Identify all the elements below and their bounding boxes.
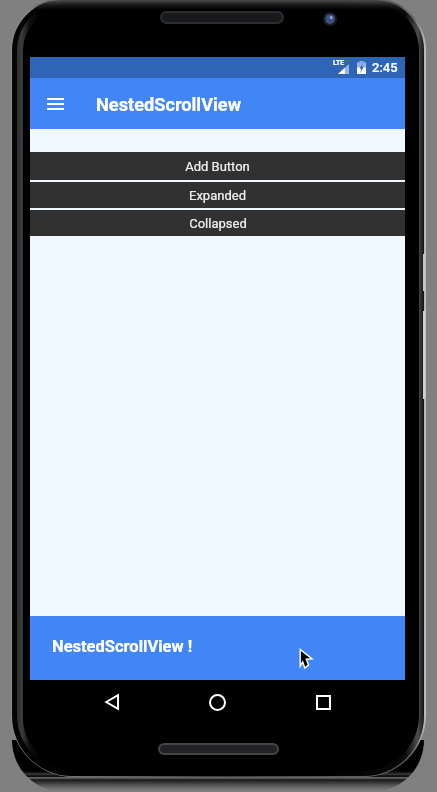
staticText: LTE — [333, 59, 345, 67]
button[interactable]: Expanded — [30, 182, 405, 208]
button[interactable]: Recent apps — [305, 684, 341, 720]
staticText: NestedScrollView — [96, 94, 242, 115]
staticText: Collapsed — [189, 216, 247, 231]
staticText: NestedScrollView ! — [52, 637, 193, 656]
staticText: 2:45 — [372, 60, 398, 75]
button[interactable]: Open navigation menu — [38, 87, 72, 121]
button[interactable]: Collapsed — [30, 210, 405, 236]
button[interactable]: Back — [94, 684, 130, 720]
staticText: Expanded — [189, 188, 246, 203]
button[interactable]: Add Button — [30, 152, 405, 180]
staticText: Add Button — [185, 159, 250, 174]
button[interactable]: Home — [199, 684, 235, 720]
